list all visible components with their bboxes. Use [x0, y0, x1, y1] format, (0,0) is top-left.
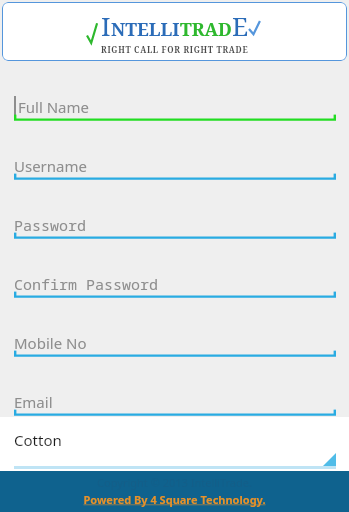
staticText: I — [101, 8, 111, 43]
staticText: Cotton — [14, 430, 62, 450]
staticText: Confirm Password — [14, 274, 159, 294]
staticText: NTELLI — [111, 17, 180, 42]
button[interactable]: Full Name — [14, 63, 336, 122]
button[interactable]: Email — [14, 358, 336, 417]
button[interactable]: Password — [14, 181, 336, 240]
staticText: Email — [14, 392, 53, 412]
button[interactable]: Mobile No — [14, 299, 336, 358]
staticText: RIGHT CALL FOR RIGHT TRADE — [101, 44, 249, 55]
staticText: Mobile No — [14, 333, 87, 353]
button[interactable]: Username — [14, 122, 336, 181]
staticText: Full Name — [18, 97, 89, 117]
staticText: Username — [14, 156, 87, 176]
staticText: TRAD — [180, 17, 232, 42]
button[interactable]: Cotton — [14, 417, 336, 469]
staticText: Powered By 4 Square Technology. — [82, 492, 267, 507]
staticText: E — [232, 8, 249, 43]
button[interactable]: I — [2, 2, 347, 61]
button[interactable]: Confirm Password — [14, 240, 336, 299]
button[interactable]: Powered By 4 Square Technology. — [82, 492, 267, 507]
staticText: Password — [14, 215, 87, 235]
